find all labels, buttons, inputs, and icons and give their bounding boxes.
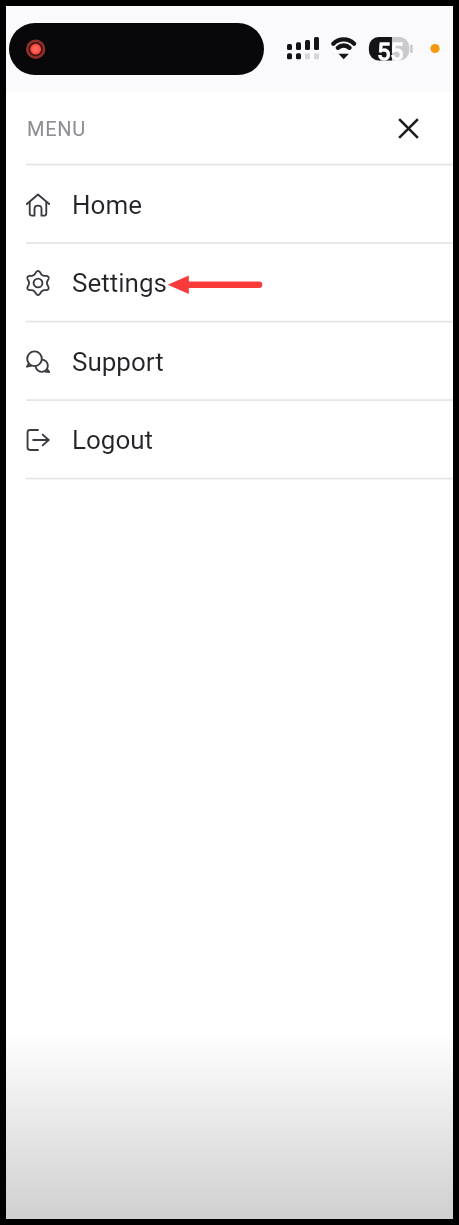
button[interactable]: Close menu — [389, 109, 427, 147]
button[interactable]: Logout — [6, 400, 453, 479]
button[interactable]: Home — [6, 165, 453, 244]
staticText: Home — [72, 190, 142, 220]
button[interactable]: Support — [6, 322, 453, 401]
button[interactable]: Settings — [6, 243, 453, 322]
staticText: Support — [72, 347, 164, 377]
staticText: MENU — [27, 117, 86, 140]
staticText: 55 — [377, 38, 404, 66]
staticText: Settings — [72, 268, 167, 298]
staticText: Logout — [72, 425, 154, 455]
